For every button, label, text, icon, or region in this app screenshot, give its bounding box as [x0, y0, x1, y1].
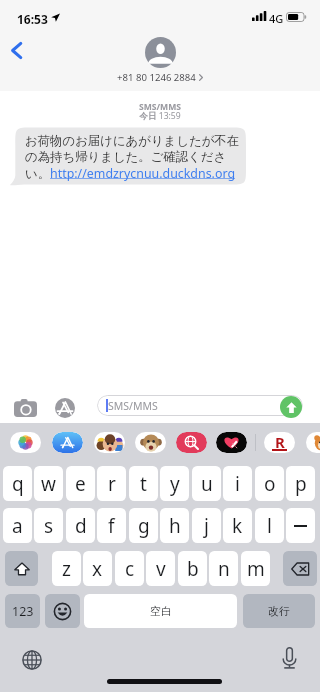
button[interactable]: c [115, 551, 144, 586]
button[interactable]: l [255, 508, 284, 543]
button[interactable]: z [52, 551, 81, 586]
button[interactable]: p [286, 466, 315, 501]
button[interactable]: 123 [5, 594, 40, 628]
button[interactable]: b [178, 551, 207, 586]
button[interactable]: Rakuten [264, 432, 295, 453]
button[interactable]: f [97, 508, 126, 543]
button[interactable]: q [3, 466, 32, 501]
staticText: z [62, 556, 71, 582]
button[interactable]: Animoji [135, 432, 166, 453]
staticText: w [41, 471, 56, 497]
staticText: q [12, 471, 24, 497]
button[interactable]: Change keyboard [19, 647, 45, 673]
staticText: 今日 13:59 [0, 110, 320, 122]
button[interactable]: g [129, 508, 158, 543]
staticText: y [170, 471, 180, 497]
button[interactable]: Health [216, 432, 247, 453]
button[interactable]: d [66, 508, 95, 543]
button[interactable]: App Store [52, 432, 83, 453]
button[interactable]: a [3, 508, 32, 543]
button[interactable]: r [97, 466, 126, 501]
button[interactable]: k [223, 508, 252, 543]
staticText: b [187, 556, 199, 582]
button[interactable]: e [66, 466, 95, 501]
staticText: g [138, 513, 150, 539]
staticText: m [247, 556, 265, 582]
staticText: 123 [12, 603, 34, 620]
button[interactable]: Camera [11, 396, 40, 420]
staticText: o [264, 471, 276, 497]
staticText: SMS/MMS [0, 101, 320, 113]
button[interactable]: +81 80 1246 2884 [0, 37, 320, 84]
staticText: R [275, 432, 285, 452]
staticText: t [140, 471, 147, 497]
staticText: h [169, 513, 181, 539]
staticText: 改行 [268, 604, 290, 618]
staticText: x [92, 556, 103, 582]
button[interactable]: Photos [10, 432, 41, 453]
button[interactable]: ー [286, 508, 315, 543]
button[interactable]: x [83, 551, 112, 586]
staticText: c [125, 556, 135, 582]
staticText: SMS/MMS [108, 399, 158, 413]
staticText: l [267, 513, 272, 539]
button[interactable]: SMS/MMS [97, 395, 303, 416]
staticText: n [218, 556, 230, 582]
button[interactable]: h [160, 508, 189, 543]
button[interactable]: Shift [5, 551, 38, 586]
staticText: i [235, 471, 240, 497]
staticText: +81 80 1246 2884 [117, 71, 196, 84]
staticText: お荷物のお届けにあがりましたが不在の為持ち帰りました。ご確認ください。http:… [25, 133, 240, 181]
staticText: 4G [269, 11, 284, 26]
button[interactable]: i [223, 466, 252, 501]
button[interactable]: u [192, 466, 221, 501]
button[interactable]: Images [176, 432, 207, 453]
staticText: v [156, 556, 166, 582]
staticText: f [108, 513, 115, 539]
button[interactable]: s [34, 508, 63, 543]
staticText: r [108, 471, 116, 497]
button[interactable]: Back [1, 35, 31, 65]
staticText: 16:53 [17, 11, 48, 27]
button[interactable]: Send [280, 396, 302, 418]
staticText: d [75, 513, 87, 539]
button[interactable]: Dictate [276, 645, 302, 671]
button[interactable]: 改行 [243, 594, 315, 628]
button[interactable]: Emoji [45, 594, 80, 628]
button[interactable]: o [255, 466, 284, 501]
button[interactable]: m [241, 551, 270, 586]
staticText: a [12, 513, 23, 539]
button[interactable]: Delete [283, 551, 317, 586]
staticText: 空白 [150, 604, 172, 618]
staticText: e [75, 471, 86, 497]
button[interactable]: t [129, 466, 158, 501]
button[interactable]: App Store [53, 396, 77, 420]
staticText: s [44, 513, 54, 539]
button[interactable]: w [34, 466, 63, 501]
staticText: p [295, 471, 307, 497]
staticText: j [204, 513, 209, 539]
staticText: k [232, 513, 243, 539]
button[interactable]: y [160, 466, 189, 501]
button[interactable]: v [146, 551, 175, 586]
staticText: u [201, 471, 213, 497]
button[interactable]: n [209, 551, 238, 586]
button[interactable]: 空白 [84, 594, 237, 628]
button[interactable]: j [192, 508, 221, 543]
button[interactable]: More [306, 432, 320, 453]
button[interactable]: Memoji [94, 432, 125, 453]
